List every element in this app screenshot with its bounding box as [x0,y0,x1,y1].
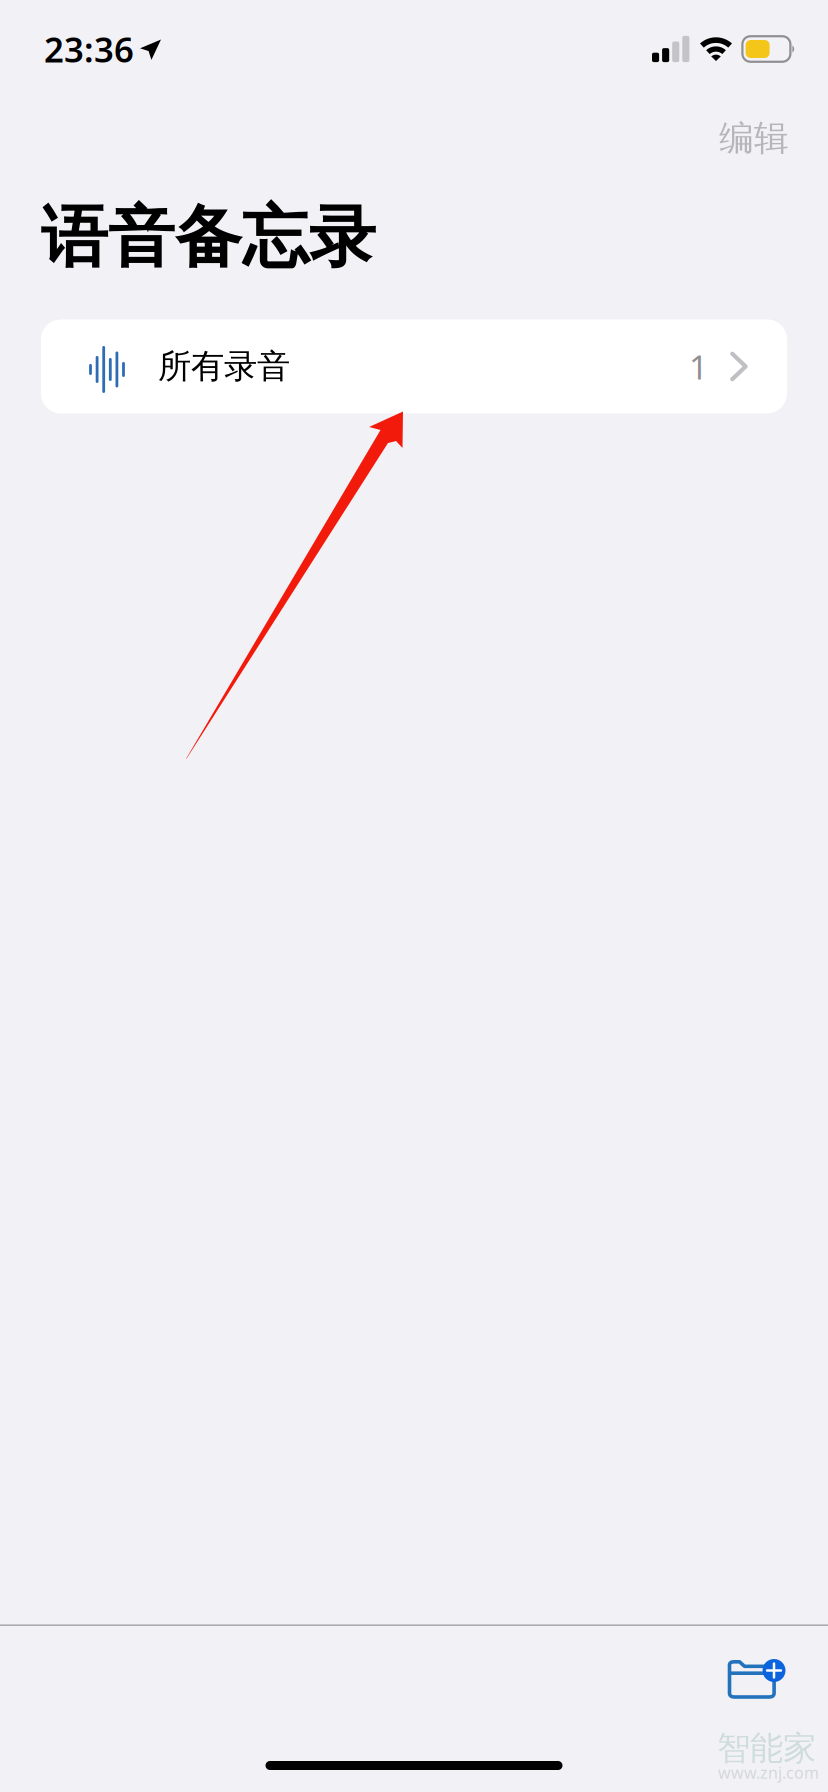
button[interactable]: 编辑 [693,98,815,169]
staticText: 所有录音 [158,346,290,387]
button[interactable]: New Folder [703,1626,801,1712]
staticText: 编辑 [719,117,789,160]
button[interactable]: 所有录音 [41,319,787,413]
staticText: 智能家 [717,1728,816,1769]
staticText: 1 [689,344,708,389]
staticText: www.znj.com [718,1762,819,1783]
staticText: 语音备忘录 [41,197,376,278]
staticText: 23:36 [44,26,134,72]
